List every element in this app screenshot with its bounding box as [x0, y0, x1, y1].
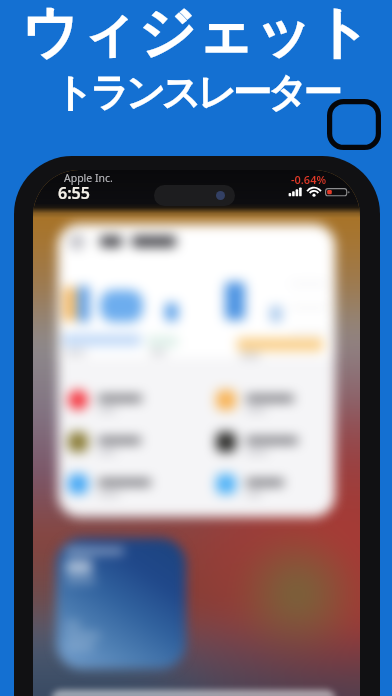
button[interactable] [216, 427, 335, 457]
button[interactable] [216, 385, 335, 415]
button[interactable] [216, 469, 335, 499]
staticText: -0.64% [291, 172, 327, 187]
button[interactable] [56, 538, 186, 669]
button[interactable]: App icon [327, 99, 381, 150]
button[interactable] [68, 385, 198, 415]
staticText: トランスレーター [0, 68, 392, 117]
button[interactable] [68, 469, 198, 499]
button[interactable] [51, 690, 336, 696]
staticText: 6:55 [58, 182, 90, 204]
staticText: Apple Inc. [64, 171, 113, 185]
staticText: ウィジェット [0, 0, 392, 69]
button[interactable] [68, 427, 198, 457]
